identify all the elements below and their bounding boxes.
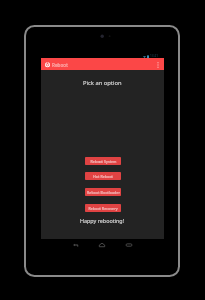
button[interactable]: Back xyxy=(70,240,82,250)
button[interactable]: Recents xyxy=(123,240,135,250)
staticText: Reboot Bootloader xyxy=(87,190,120,195)
button[interactable]: Reboot System xyxy=(85,157,121,165)
staticText: Hot Reboot xyxy=(93,174,113,179)
other: Reboot xyxy=(45,62,50,67)
staticText: Reboot System xyxy=(90,159,117,164)
staticText: Pick an option xyxy=(83,79,122,87)
button[interactable]: Hot Reboot xyxy=(85,172,121,180)
button[interactable]: More options xyxy=(154,58,162,71)
button[interactable]: Home xyxy=(96,240,108,250)
button[interactable]: Reboot Recovery xyxy=(85,204,121,212)
staticText: Reboot Recovery xyxy=(88,206,118,211)
button[interactable]: Reboot Bootloader xyxy=(85,188,121,196)
staticText: Reboot xyxy=(52,62,68,68)
staticText: Happy rebooting! xyxy=(80,217,125,224)
staticText: 13:21 xyxy=(150,54,159,58)
